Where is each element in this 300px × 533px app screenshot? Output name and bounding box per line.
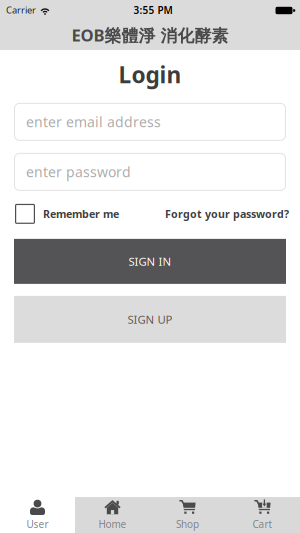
staticText: Remember me [43,207,119,221]
staticText: EOB樂體淨 消化酵素 [71,24,228,46]
staticText: Shop [176,517,199,531]
button[interactable]: enter password [14,153,286,191]
button[interactable]: SIGN UP [14,296,286,343]
button[interactable]: Forgot your password? [165,207,289,221]
staticText: Cart [252,517,272,531]
staticText: Carrier [6,4,36,16]
staticText: SIGN UP [127,312,172,327]
button[interactable]: Remember me [15,204,119,224]
button[interactable]: Shop [150,497,225,533]
staticText: User [26,517,48,531]
button[interactable]: Home [75,497,150,533]
staticText: 3:55 PM [133,3,172,17]
staticText: Forgot your password? [165,207,289,221]
button[interactable]: SIGN IN [14,239,286,284]
staticText: enter password [26,162,131,181]
staticText: Login [118,59,181,90]
staticText: Home [98,517,126,531]
staticText: SIGN IN [128,254,171,269]
button[interactable]: enter email address [14,103,286,141]
button[interactable]: Cart [225,497,300,533]
staticText: enter email address [26,112,161,131]
button[interactable]: User [0,497,75,533]
